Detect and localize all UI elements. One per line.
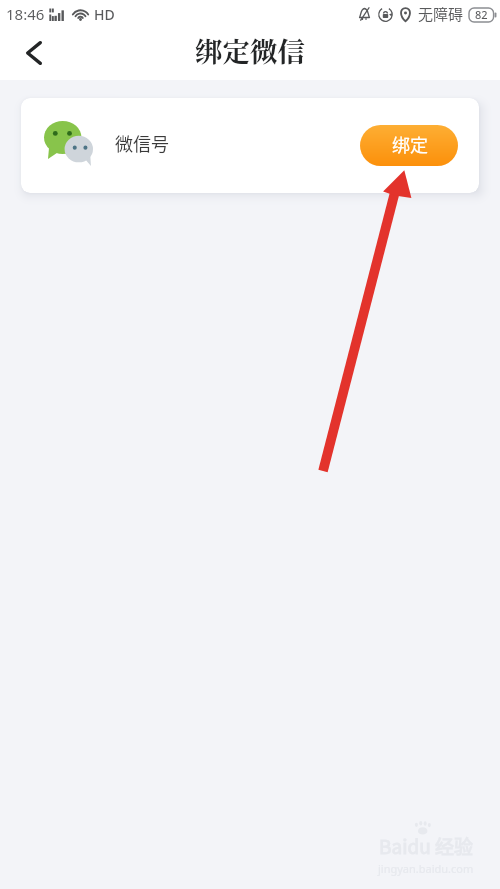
staticText: Baidu 经验	[379, 832, 473, 860]
staticText: 无障碍	[418, 3, 464, 25]
staticText: 绑定微信	[195, 30, 305, 70]
button[interactable]: 绑定	[360, 125, 458, 166]
staticText: HD	[94, 5, 115, 24]
button[interactable]: Back	[0, 28, 56, 80]
staticText: 微信号	[115, 130, 169, 156]
staticText: 绑定	[392, 131, 428, 157]
staticText: jingyan.baidu.com	[378, 861, 474, 876]
staticText: 82	[475, 7, 488, 22]
staticText: 18:46	[6, 4, 45, 24]
